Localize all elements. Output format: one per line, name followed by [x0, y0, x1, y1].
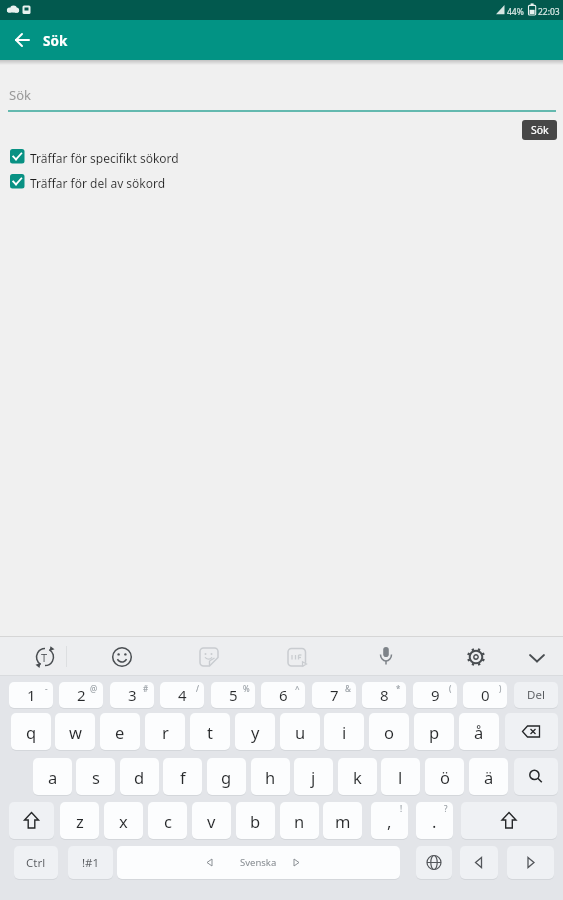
staticText: c [164, 810, 172, 832]
button[interactable]: r [145, 713, 185, 750]
staticText: ö [440, 766, 450, 788]
button[interactable] [514, 758, 558, 795]
button[interactable]: v [192, 802, 231, 839]
staticText: g [221, 766, 232, 788]
staticText: z [76, 810, 84, 832]
button[interactable]: Del [514, 682, 558, 708]
button[interactable]: 0 [463, 682, 507, 708]
staticText: d [134, 766, 145, 788]
button[interactable]: ö [425, 758, 464, 795]
staticText: 3 [128, 685, 137, 705]
staticText: 8 [380, 685, 389, 705]
staticText: ( [449, 683, 452, 694]
button[interactable]: a [33, 758, 72, 795]
staticText: Ctrl [26, 855, 46, 871]
staticText: Sök [9, 86, 31, 104]
button[interactable]: 2 [59, 682, 103, 708]
button[interactable]: . [416, 802, 453, 839]
button[interactable]: m [323, 802, 362, 839]
button[interactable]: y [235, 713, 275, 750]
button[interactable]: q [11, 713, 51, 750]
button[interactable]: h [251, 758, 290, 795]
button[interactable] [505, 713, 558, 750]
button[interactable]: j [294, 758, 333, 795]
button[interactable]: 4 [160, 682, 204, 708]
staticText: 6 [279, 685, 288, 705]
staticText: m [335, 810, 351, 832]
button[interactable]: g [207, 758, 246, 795]
button[interactable]: Träffar för specifikt sökord [10, 149, 260, 164]
button[interactable] [461, 802, 557, 839]
button[interactable]: d [120, 758, 159, 795]
staticText: ^ [295, 683, 300, 694]
staticText: 5 [229, 685, 238, 705]
button[interactable]: s [76, 758, 115, 795]
button[interactable]: 9 [413, 682, 457, 708]
button[interactable]: 6 [261, 682, 305, 708]
button[interactable]: Svenska [117, 846, 400, 879]
staticText: T [41, 650, 48, 665]
button[interactable]: !#1 [68, 846, 113, 879]
button[interactable] [462, 643, 490, 671]
button[interactable]: k [338, 758, 377, 795]
button[interactable]: i [324, 713, 364, 750]
button[interactable] [9, 802, 54, 839]
button[interactable] [31, 643, 59, 671]
button[interactable]: b [236, 802, 275, 839]
button[interactable]: u [280, 713, 320, 750]
staticText: e [115, 721, 125, 743]
button[interactable]: Sök [522, 120, 557, 140]
staticText: u [295, 721, 306, 743]
staticText: 0 [481, 685, 490, 705]
button[interactable]: n [280, 802, 319, 839]
button[interactable] [195, 643, 223, 671]
button[interactable] [507, 846, 554, 879]
button[interactable]: ä [469, 758, 508, 795]
button[interactable]: w [55, 713, 95, 750]
button[interactable]: p [414, 713, 454, 750]
staticText: 9 [431, 685, 440, 705]
button[interactable] [372, 642, 400, 670]
button[interactable] [283, 643, 311, 671]
button[interactable] [8, 26, 36, 54]
button[interactable]: c [148, 802, 187, 839]
button[interactable]: l [381, 758, 420, 795]
staticText: # [143, 683, 149, 694]
button[interactable]: f [163, 758, 202, 795]
button[interactable]: 5 [211, 682, 255, 708]
button[interactable]: z [60, 802, 99, 839]
button[interactable]: o [369, 713, 409, 750]
staticText: t [207, 721, 213, 743]
button[interactable]: x [104, 802, 143, 839]
button[interactable]: 3 [110, 682, 154, 708]
button[interactable] [460, 846, 498, 879]
button[interactable] [416, 846, 452, 879]
button[interactable] [108, 643, 136, 671]
staticText: s [92, 766, 100, 788]
staticText: o [384, 721, 394, 743]
staticText: - [45, 683, 48, 694]
button[interactable]: Träffar för del av sökord [10, 174, 260, 189]
button[interactable]: 1 [9, 682, 53, 708]
button[interactable]: t [190, 713, 230, 750]
staticText: 44% [507, 6, 524, 18]
staticText: 1 [27, 685, 36, 705]
staticText: & [345, 683, 351, 694]
staticText: j [311, 766, 316, 788]
button[interactable]: e [100, 713, 140, 750]
button[interactable]: Sök [43, 32, 68, 50]
staticText: p [429, 721, 440, 743]
staticText: Svenska [240, 856, 277, 869]
button[interactable]: Ctrl [14, 846, 58, 879]
staticText: ä [484, 766, 494, 788]
staticText: ) [499, 683, 502, 694]
staticText: h [265, 766, 276, 788]
staticText: Sök [531, 123, 549, 137]
button[interactable]: , [371, 802, 408, 839]
staticText: Del [527, 687, 545, 703]
button[interactable] [524, 645, 550, 671]
staticText: 2 [77, 685, 86, 705]
button[interactable]: 7 [312, 682, 356, 708]
button[interactable]: å [459, 713, 499, 750]
button[interactable]: 8 [362, 682, 406, 708]
